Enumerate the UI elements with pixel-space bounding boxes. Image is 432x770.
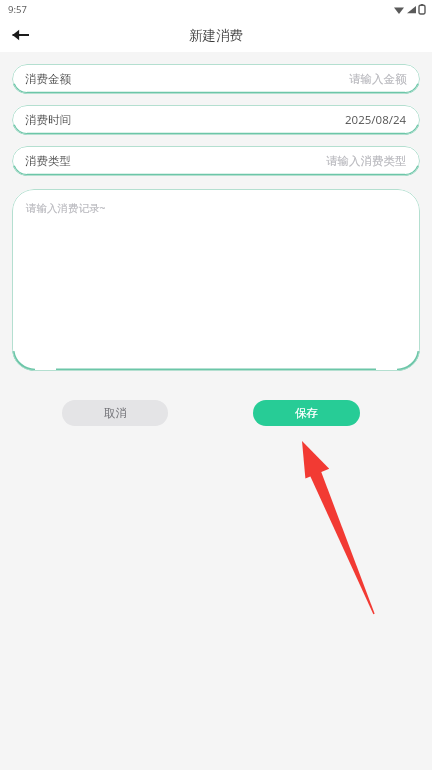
staticText: 请输入金额 [349, 72, 407, 86]
staticText: 保存 [295, 406, 318, 420]
staticText: 消费金额 [25, 72, 71, 86]
staticText: 消费类型 [25, 154, 71, 168]
staticText: 2025/08/24 [345, 112, 407, 128]
button[interactable]: 请输入消费记录~ [12, 189, 420, 371]
button[interactable]: 保存 [253, 400, 360, 426]
button[interactable]: 消费时间 [12, 105, 420, 135]
staticText: 新建消费 [189, 27, 243, 44]
staticText: 请输入消费记录~ [26, 201, 106, 215]
button[interactable]: 消费金额 [12, 64, 420, 94]
staticText: 消费时间 [25, 113, 71, 127]
button[interactable]: Back [0, 18, 40, 52]
button[interactable]: 消费类型 [12, 146, 420, 176]
button[interactable]: 取消 [62, 400, 168, 426]
staticText: 9:57 [8, 3, 27, 16]
staticText: 请输入消费类型 [326, 154, 407, 168]
staticText: 取消 [104, 406, 127, 420]
